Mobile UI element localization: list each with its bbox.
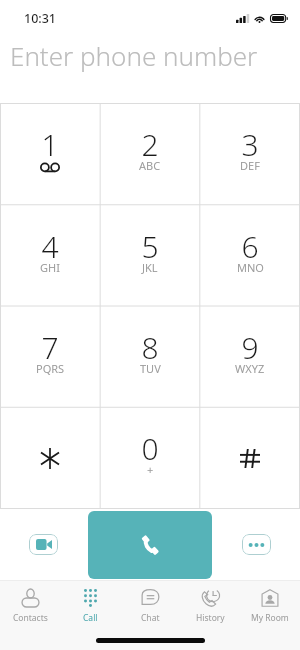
staticText: GHI [40, 260, 60, 275]
button[interactable]: My Room [240, 581, 300, 631]
staticText: 0 [141, 428, 159, 469]
button[interactable]: 0 [100, 408, 200, 508]
button[interactable]: 9 [200, 307, 300, 407]
button[interactable]: 7 [0, 307, 100, 407]
staticText: 3 [241, 124, 259, 165]
staticText: JKL [142, 260, 158, 275]
staticText: PQRS [36, 361, 65, 376]
staticText: TUV [140, 361, 161, 376]
staticText: WXYZ [235, 361, 265, 376]
staticText: 2 [141, 124, 159, 165]
button[interactable]: 6 [200, 206, 300, 306]
staticText: Enter phone number [10, 38, 258, 73]
staticText: 10:31 [24, 10, 57, 27]
button[interactable]: 1 [0, 104, 100, 205]
staticText: 6 [241, 226, 259, 267]
staticText: 5 [141, 226, 159, 267]
button[interactable]: Call [60, 581, 120, 631]
staticText: 8 [141, 327, 159, 368]
button[interactable]: More options [242, 534, 271, 555]
staticText: Chat [141, 612, 160, 624]
staticText: ABC [139, 158, 161, 173]
staticText: 7 [41, 327, 59, 368]
button[interactable]: 3 [200, 104, 300, 205]
button[interactable] [200, 408, 300, 508]
button[interactable]: History [180, 581, 240, 631]
staticText: + [147, 462, 154, 477]
staticText: History [196, 612, 225, 624]
staticText: DEF [240, 158, 260, 173]
button[interactable]: 4 [0, 206, 100, 306]
button[interactable]: Contacts [0, 581, 60, 631]
button[interactable]: Video call [29, 534, 58, 555]
button[interactable]: 8 [100, 307, 200, 407]
button[interactable]: 2 [100, 104, 200, 205]
staticText: Contacts [13, 612, 48, 624]
button[interactable]: 5 [100, 206, 200, 306]
button[interactable]: Chat [120, 581, 180, 631]
button[interactable]: Call [88, 511, 212, 579]
staticText: Call [83, 612, 98, 624]
button[interactable] [0, 408, 100, 508]
staticText: 1 [41, 124, 59, 165]
staticText: MNO [237, 260, 264, 275]
staticText: My Room [251, 612, 289, 624]
staticText: 9 [241, 327, 259, 368]
staticText: 4 [41, 226, 59, 267]
